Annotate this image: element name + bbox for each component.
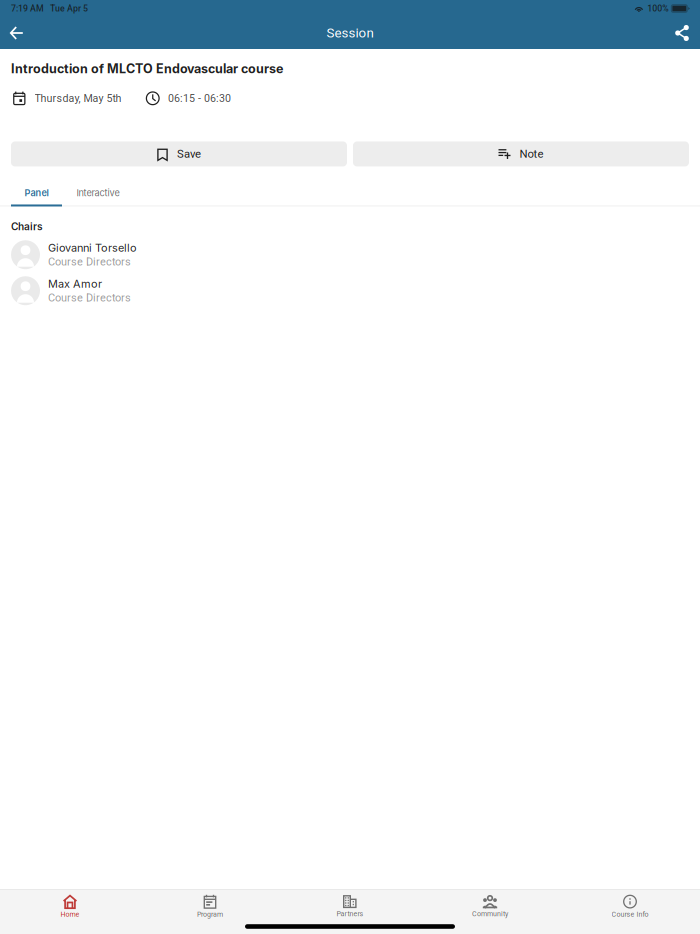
staticText: Chairs [11, 220, 43, 233]
staticText: Introduction of MLCTO Endovascular cours… [11, 61, 283, 76]
staticText: Home [60, 910, 79, 918]
button[interactable]: Program [140, 890, 280, 923]
staticText: 7:19 AM Tue Apr 5 [11, 3, 88, 14]
button[interactable]: Interactive [62, 180, 134, 205]
staticText: Thursday, May 5th [35, 92, 122, 105]
staticText: Interactive [76, 187, 119, 198]
button[interactable]: Share [665, 17, 699, 49]
button[interactable]: Panel [11, 180, 62, 205]
button[interactable]: Save [11, 141, 347, 166]
staticText: Session [326, 25, 373, 41]
staticText: Giovanni Torsello [48, 241, 137, 254]
staticText: Community [472, 910, 508, 918]
staticText: 06:15 - 06:30 [168, 92, 231, 105]
button[interactable]: Partners [280, 890, 420, 923]
staticText: Program [197, 910, 223, 918]
button[interactable]: Home [0, 890, 140, 923]
staticText: Partners [336, 910, 363, 918]
button[interactable]: Note [353, 141, 689, 166]
staticText: Course Directors [48, 255, 131, 268]
button[interactable]: Course Info [560, 890, 700, 923]
staticText: Panel [24, 187, 48, 198]
button[interactable]: Community [420, 890, 560, 923]
staticText: 100% [647, 3, 668, 14]
staticText: Course Info [611, 910, 648, 918]
staticText: Max Amor [48, 277, 102, 290]
button[interactable]: Back [0, 17, 33, 49]
staticText: Save [177, 147, 201, 161]
staticText: Note [519, 147, 543, 161]
staticText: Course Directors [48, 291, 131, 304]
